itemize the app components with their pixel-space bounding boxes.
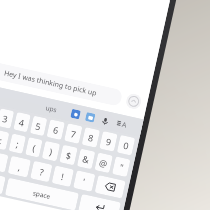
button[interactable]: Hey I was thinking to pick up	[0, 61, 123, 107]
button[interactable]: Emoji	[0, 172, 6, 194]
staticText: ;	[15, 138, 20, 150]
button[interactable]: &	[77, 148, 95, 169]
button[interactable]: Voice input	[99, 115, 111, 127]
button[interactable]: Return	[78, 194, 121, 210]
staticText: "	[118, 160, 125, 173]
button[interactable]: 5	[30, 116, 47, 136]
button[interactable]: ?	[30, 161, 52, 182]
button[interactable]: 8	[82, 127, 100, 148]
button[interactable]: @	[94, 152, 113, 173]
button[interactable]: "	[112, 156, 130, 177]
button[interactable]: Backspace	[94, 175, 126, 199]
staticText: 8	[87, 131, 96, 144]
button[interactable]: ,	[8, 156, 31, 178]
staticText: (	[32, 141, 37, 154]
button[interactable]: Stickers	[70, 109, 81, 119]
staticText: 3	[1, 112, 10, 125]
staticText: )	[48, 145, 54, 157]
button[interactable]: )	[42, 141, 60, 161]
staticText: 7	[70, 127, 78, 140]
button[interactable]: $	[59, 145, 78, 165]
staticText: @	[98, 156, 109, 170]
button[interactable]: 0	[117, 135, 135, 156]
button[interactable]: .	[0, 151, 9, 173]
staticText: 5	[34, 119, 43, 132]
button[interactable]: Text formatting	[115, 118, 128, 131]
staticText: Hey I was thinking to pick up	[3, 68, 98, 99]
button[interactable]: 3	[0, 108, 14, 129]
staticText: 4	[18, 116, 26, 129]
button[interactable]: Send	[125, 92, 143, 110]
button[interactable]: 4	[13, 112, 31, 132]
staticText: A	[121, 120, 128, 131]
staticText: 6	[52, 123, 60, 136]
staticText: '	[81, 175, 87, 187]
button[interactable]: ;	[8, 133, 26, 154]
button[interactable]: 6	[46, 119, 65, 140]
staticText: space	[32, 188, 52, 201]
staticText: &	[81, 152, 91, 165]
staticText: 9	[105, 135, 113, 148]
button[interactable]: GIF	[85, 112, 95, 123]
staticText: ,	[17, 161, 23, 173]
button[interactable]: 9	[99, 131, 118, 152]
staticText: $	[65, 149, 73, 162]
staticText: 0	[122, 139, 131, 152]
staticText: ups	[45, 103, 58, 114]
staticText: ?	[39, 165, 45, 178]
staticText: :	[0, 134, 4, 146]
button[interactable]: !	[52, 165, 74, 187]
button[interactable]: '	[73, 170, 95, 192]
button[interactable]: :	[0, 130, 10, 150]
button[interactable]: 7	[64, 123, 82, 144]
button[interactable]: (	[25, 137, 43, 158]
button[interactable]: space	[5, 178, 79, 210]
staticText: !	[60, 170, 65, 182]
